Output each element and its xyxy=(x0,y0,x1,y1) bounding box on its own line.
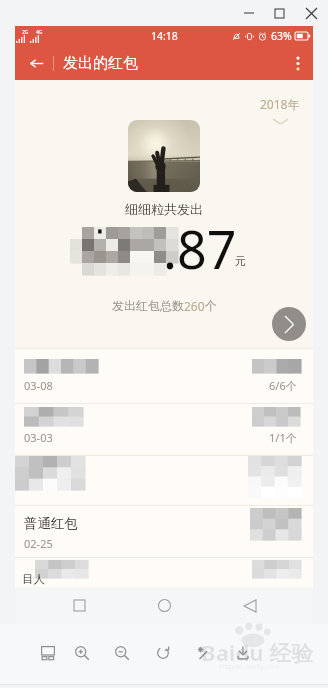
button[interactable] xyxy=(15,557,313,587)
button[interactable] xyxy=(15,455,313,505)
button[interactable] xyxy=(15,403,313,455)
staticText: 普通红包 xyxy=(24,515,78,532)
button[interactable]: Recent apps xyxy=(57,587,101,624)
button[interactable]: Maximize xyxy=(264,1,294,25)
staticText: 4G xyxy=(36,29,43,36)
staticText: 260 xyxy=(184,298,205,314)
staticText: 02-25 xyxy=(24,536,53,551)
button[interactable]: Download xyxy=(230,640,256,666)
staticText: 0.20元 xyxy=(261,470,296,486)
staticText: 1/1个 xyxy=(269,430,297,445)
staticText: 2018年 xyxy=(260,96,300,112)
staticText: 发出红包总数 xyxy=(112,298,184,313)
staticText: 2G xyxy=(22,29,29,36)
staticText: .87 xyxy=(163,213,237,284)
staticText: 细细粒共发出 xyxy=(125,201,203,217)
staticText: 03-03 xyxy=(24,430,53,445)
staticText: 63% xyxy=(271,29,292,43)
staticText: Baidu 经验 xyxy=(201,637,314,667)
button[interactable]: Close xyxy=(294,1,328,25)
button[interactable]: Zoom out xyxy=(109,640,135,666)
button[interactable]: 2018年 xyxy=(260,96,300,124)
button[interactable]: More options xyxy=(283,46,313,80)
button[interactable] xyxy=(15,348,313,403)
staticText: 目人 xyxy=(22,572,45,586)
button[interactable]: Profile photo xyxy=(128,120,200,192)
staticText: 03-08 xyxy=(24,378,53,393)
button[interactable]: Back xyxy=(228,587,272,624)
staticText: 发出的红包 xyxy=(63,54,138,73)
button[interactable]: Zoom in xyxy=(69,640,95,666)
button[interactable]: Back xyxy=(20,46,52,80)
staticText: 个 xyxy=(205,298,217,313)
staticText: 元 xyxy=(235,254,246,268)
button[interactable]: Home xyxy=(142,587,186,624)
button[interactable]: Minimize xyxy=(234,1,264,25)
button[interactable]: Rotate xyxy=(150,640,176,666)
button[interactable]: Beautify xyxy=(191,640,217,666)
staticText: 14:18 xyxy=(151,29,178,43)
button[interactable] xyxy=(15,505,313,557)
button[interactable]: Next xyxy=(272,307,306,341)
staticText: 6/6个 xyxy=(269,378,297,393)
button[interactable]: Fit to window xyxy=(35,640,61,666)
